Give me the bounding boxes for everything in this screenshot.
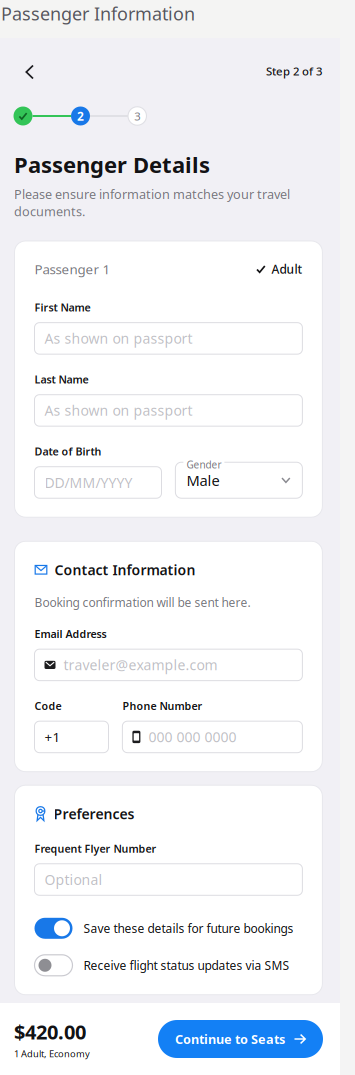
staticText: Booking confirmation will be sent here. (34, 594, 250, 611)
button[interactable]: Back (25, 60, 49, 84)
staticText: Receive flight status updates via SMS (83, 957, 289, 973)
staticText: Please ensure information matches your t… (14, 185, 290, 220)
staticText: Adult (271, 261, 302, 277)
staticText: Date of Birth (34, 444, 101, 459)
button[interactable]: Continue to Seats (158, 1020, 323, 1058)
staticText: Passenger Details (14, 149, 210, 179)
staticText: Optional (44, 870, 102, 889)
staticText: As shown on passport (44, 401, 192, 420)
staticText: Preferences (53, 804, 134, 823)
staticText: Code (34, 699, 61, 713)
staticText: 2 (77, 108, 84, 124)
button[interactable]: Save these details for future bookings (34, 918, 302, 939)
staticText: Step 2 of 3 (266, 63, 322, 79)
staticText: Continue to Seats (175, 1030, 285, 1048)
staticText: Contact Information (54, 560, 195, 579)
staticText: Passenger Information (1, 1, 195, 26)
staticText: As shown on passport (44, 329, 192, 348)
staticText: Frequent Flyer Number (34, 841, 156, 856)
staticText: Last Name (34, 372, 88, 387)
staticText: First Name (34, 300, 90, 315)
staticText: Phone Number (122, 699, 202, 713)
staticText: 1 Adult, Economy (14, 1047, 90, 1060)
button[interactable]: Male (175, 462, 302, 498)
button[interactable]: Receive flight status updates via SMS (34, 955, 302, 976)
staticText: Email Address (34, 627, 106, 641)
staticText: traveler@example.com (63, 655, 217, 674)
staticText: 000 000 0000 (148, 727, 236, 746)
staticText: +1 (44, 728, 60, 746)
staticText: Passenger 1 (34, 260, 110, 278)
staticText: $420.00 (14, 1018, 86, 1045)
staticText: Gender (186, 458, 221, 471)
staticText: 3 (134, 108, 140, 124)
staticText: Save these details for future bookings (83, 920, 293, 936)
staticText: Male (186, 470, 219, 490)
staticText: DD/MM/YYYY (44, 473, 132, 492)
